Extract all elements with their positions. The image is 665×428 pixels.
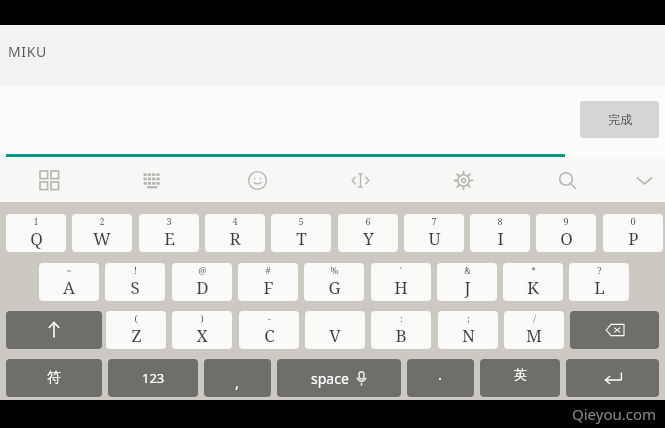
button[interactable]: ( — [106, 311, 166, 349]
button[interactable]: 7 — [404, 214, 464, 252]
staticText: 0 — [630, 215, 636, 227]
button[interactable]: & — [437, 263, 497, 301]
button[interactable]: # — [238, 263, 298, 301]
staticText: : — [400, 312, 403, 324]
button[interactable]: : — [371, 311, 431, 349]
staticText: 完成 — [608, 112, 632, 127]
button[interactable]: Backspace — [570, 311, 659, 349]
button[interactable]: 6 — [338, 214, 398, 252]
button[interactable]: @ — [172, 263, 232, 301]
button[interactable]: - — [239, 311, 299, 349]
button[interactable]: ~ — [39, 263, 99, 301]
staticText: F — [263, 276, 274, 299]
button[interactable]: Emoji — [238, 161, 276, 199]
staticText: N — [462, 324, 475, 347]
staticText: A — [63, 276, 75, 299]
button[interactable]: Settings — [444, 161, 482, 199]
button[interactable]: 3 — [139, 214, 199, 252]
button[interactable]: 1 — [6, 214, 66, 252]
staticText: H — [394, 276, 408, 299]
staticText: Q — [30, 227, 43, 250]
button[interactable]: 4 — [205, 214, 265, 252]
staticText: W — [93, 227, 111, 250]
staticText: Qieyou.com — [572, 404, 657, 424]
staticText: E — [164, 227, 175, 250]
staticText: K — [527, 276, 539, 299]
staticText: 3 — [166, 215, 172, 227]
button[interactable]: 2 — [72, 214, 132, 252]
button[interactable]: space — [277, 359, 401, 397]
button[interactable]: , — [204, 359, 271, 397]
button[interactable]: ' — [371, 263, 431, 301]
staticText: R — [229, 227, 241, 250]
button[interactable]: Shift — [6, 311, 102, 349]
staticText: L — [594, 276, 605, 299]
staticText: J — [464, 276, 471, 299]
staticText: 9 — [563, 215, 569, 227]
staticText: 7 — [431, 215, 437, 227]
button[interactable]: V — [305, 311, 365, 349]
staticText: ~ — [66, 264, 72, 276]
button[interactable]: 8 — [470, 214, 530, 252]
staticText: % — [330, 264, 339, 276]
staticText: - — [268, 312, 271, 324]
staticText: P — [628, 227, 639, 250]
staticText: ) — [200, 312, 204, 324]
button[interactable]: * — [503, 263, 563, 301]
button[interactable]: Hide keyboard — [625, 161, 663, 199]
button[interactable]: % — [304, 263, 364, 301]
staticText: C — [264, 324, 275, 347]
staticText: 6 — [365, 215, 371, 227]
staticText: B — [395, 324, 407, 347]
staticText: G — [328, 276, 341, 299]
button[interactable]: 0 — [603, 214, 663, 252]
button[interactable]: 完成 — [580, 101, 659, 138]
button[interactable]: 5 — [271, 214, 331, 252]
staticText: ; — [467, 312, 470, 324]
staticText: / — [533, 312, 536, 324]
button[interactable]: ! — [105, 263, 165, 301]
button[interactable]: ; — [438, 311, 498, 349]
staticText: & — [464, 264, 471, 276]
button[interactable]: 英 — [480, 359, 560, 397]
button[interactable]: Layouts — [30, 161, 68, 199]
button[interactable]: Move cursor — [341, 161, 379, 199]
button[interactable]: / — [504, 311, 564, 349]
staticText: @ — [198, 264, 207, 276]
staticText: 5 — [298, 215, 304, 227]
staticText: 4 — [232, 215, 238, 227]
staticText: V — [329, 324, 341, 347]
button[interactable]: Search — [548, 161, 586, 199]
staticText: ? — [597, 264, 602, 276]
button[interactable]: ? — [569, 263, 629, 301]
staticText: 2 — [99, 215, 105, 227]
button[interactable]: 123 — [108, 359, 198, 397]
staticText: T — [296, 227, 307, 250]
staticText: · — [438, 368, 443, 388]
button[interactable]: Keyboard — [133, 161, 171, 199]
staticText: O — [560, 227, 573, 250]
staticText: M — [526, 324, 542, 347]
staticText: X — [196, 324, 208, 347]
staticText: # — [265, 264, 271, 276]
staticText: U — [428, 227, 441, 250]
button[interactable]: ) — [172, 311, 232, 349]
staticText: ( — [134, 312, 138, 324]
button[interactable]: · — [407, 359, 474, 397]
staticText: Y — [363, 227, 374, 250]
staticText: * — [531, 264, 536, 276]
staticText: I — [497, 227, 504, 250]
staticText: D — [196, 276, 209, 299]
staticText: 英 — [514, 366, 527, 382]
staticText: MIKU — [8, 42, 47, 61]
button[interactable]: 9 — [536, 214, 596, 252]
staticText: Z — [131, 324, 142, 347]
staticText: , — [235, 372, 240, 392]
staticText: 1 — [33, 215, 39, 227]
staticText: space — [311, 369, 349, 388]
button[interactable]: 符 — [6, 359, 102, 397]
staticText: 123 — [142, 369, 165, 387]
staticText: 8 — [497, 215, 503, 227]
button[interactable]: Enter — [566, 359, 659, 397]
staticText: 符 — [47, 369, 61, 387]
